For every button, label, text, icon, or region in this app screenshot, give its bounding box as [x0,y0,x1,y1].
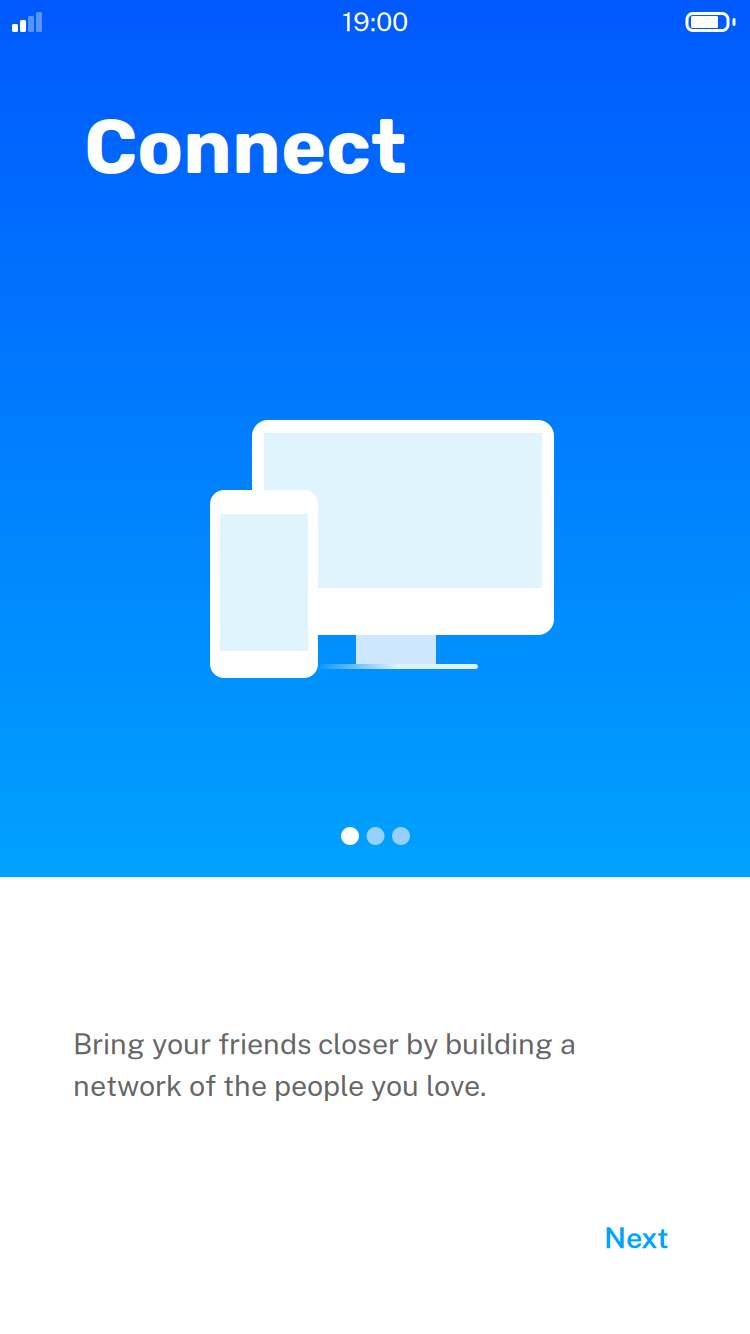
button[interactable]: Page 1, current page [341,827,359,845]
button[interactable]: Page 3 [392,827,410,845]
staticText: Bring your friends closer by building a … [73,1027,576,1102]
button[interactable]: Next [586,1207,687,1269]
staticText: Connect [84,102,406,192]
staticText: 19:00 [342,6,408,37]
button[interactable]: Page 2 [366,827,384,845]
staticText: Next [604,1221,669,1255]
